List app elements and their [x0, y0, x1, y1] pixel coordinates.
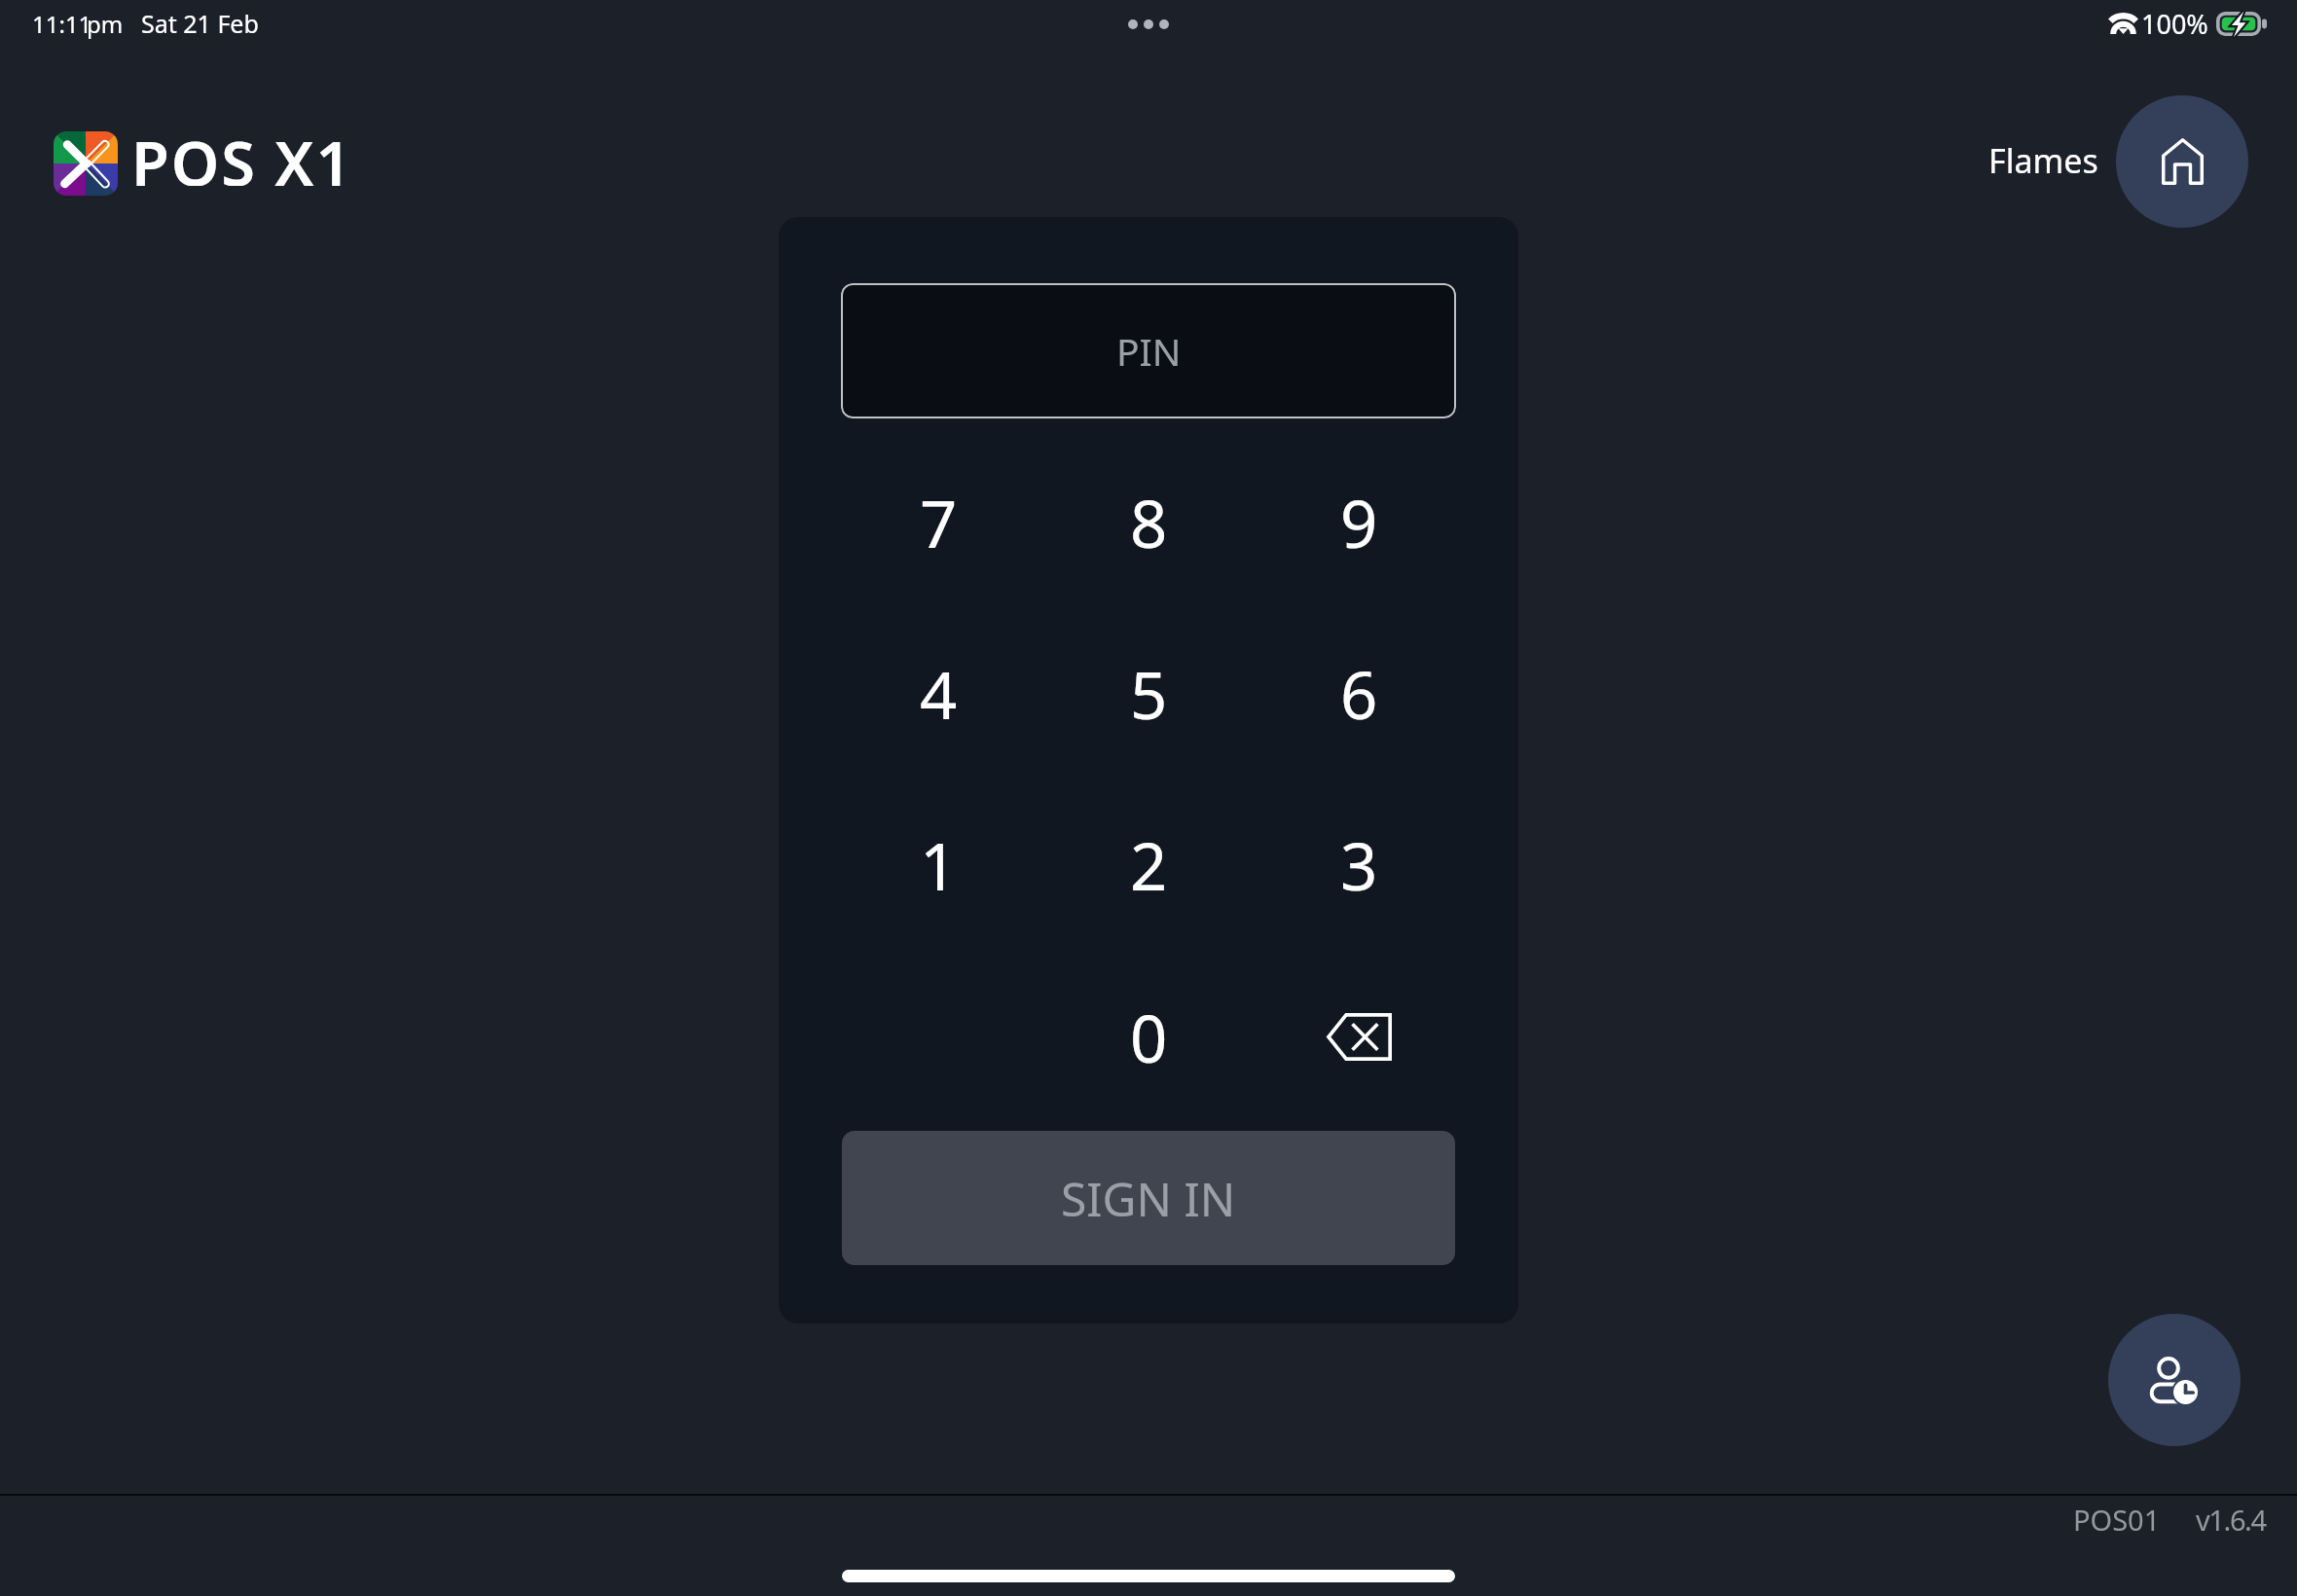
button[interactable]: Home [2116, 95, 2248, 228]
staticText: SIGN IN [1061, 1167, 1236, 1230]
staticText: 100% [2141, 6, 2208, 42]
button[interactable]: 4 [833, 607, 1043, 779]
button[interactable]: 7 [833, 436, 1043, 607]
staticText: POS01 [2073, 1501, 2161, 1539]
button[interactable]: 3 [1254, 779, 1464, 950]
button[interactable]: Flames [1976, 125, 2086, 175]
staticText: 11:11 [32, 8, 92, 40]
staticText: PIN [1116, 325, 1182, 377]
button[interactable]: 9 [1254, 436, 1464, 607]
staticText: 1 [920, 820, 958, 909]
staticText: pm [87, 8, 124, 40]
staticText: 6 [1340, 649, 1378, 738]
button[interactable]: 0 [1043, 951, 1254, 1122]
button[interactable]: 8 [1043, 436, 1254, 607]
staticText: v1.6.4 [2196, 1501, 2266, 1539]
staticText: Flames [1988, 138, 2098, 183]
staticText: 2 [1130, 820, 1168, 909]
button[interactable]: 2 [1043, 779, 1254, 950]
button[interactable]: PIN [841, 283, 1456, 418]
staticText: 4 [920, 649, 958, 738]
button[interactable]: 5 [1043, 607, 1254, 779]
staticText: 8 [1130, 478, 1168, 566]
button[interactable]: Backspace [1254, 951, 1464, 1122]
staticText: 3 [1340, 820, 1378, 909]
button[interactable]: 6 [1254, 607, 1464, 779]
staticText: 5 [1130, 649, 1168, 738]
button[interactable]: SIGN IN [842, 1131, 1455, 1265]
button[interactable]: POS X1 [54, 121, 353, 186]
staticText: Sat 21 Feb [141, 7, 259, 40]
staticText: 9 [1340, 478, 1378, 566]
button[interactable]: Shift history [2108, 1314, 2241, 1446]
staticText: POS X1 [131, 121, 353, 186]
button[interactable]: 1 [833, 779, 1043, 950]
staticText: 7 [920, 478, 958, 566]
staticText: 0 [1130, 993, 1168, 1081]
